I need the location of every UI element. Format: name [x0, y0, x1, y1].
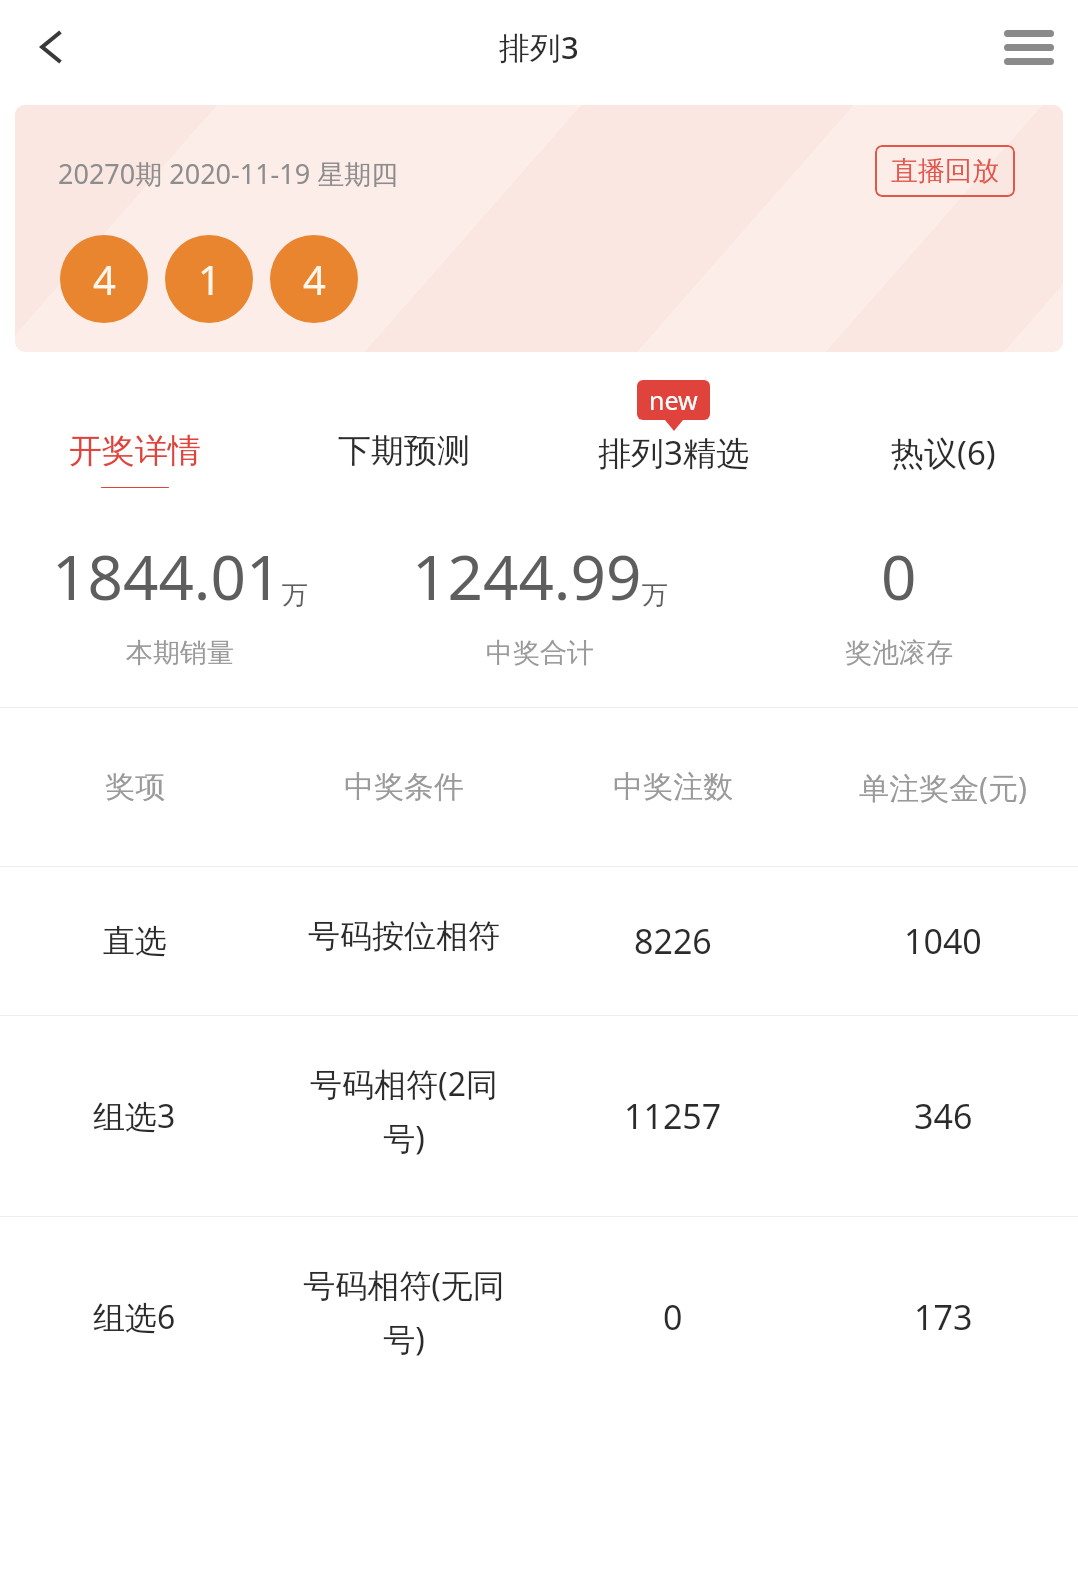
staticText: 号码按位相符 — [308, 916, 500, 956]
staticText: 开奖详情 — [69, 430, 201, 472]
staticText: 热议(6) — [891, 430, 996, 475]
button[interactable]: 1244.99 — [360, 534, 719, 670]
staticText: 8226 — [634, 918, 712, 964]
button[interactable]: 1844.01 — [0, 534, 360, 670]
staticText: 排列3 — [499, 26, 579, 68]
button[interactable]: 下期预测 — [269, 378, 538, 488]
staticText: 排列3精选 — [598, 430, 749, 475]
staticText: 11257 — [624, 1093, 722, 1139]
staticText: 万 — [642, 579, 668, 612]
staticText: 直选 — [103, 921, 167, 961]
staticText: 4 — [303, 252, 326, 306]
staticText: 万 — [282, 579, 308, 612]
staticText: 173 — [914, 1294, 973, 1340]
staticText: 单注奖金(元) — [859, 767, 1027, 808]
staticText: 1040 — [904, 918, 982, 964]
staticText: 号) — [383, 1116, 425, 1160]
staticText: 号码相符(2同 — [310, 1062, 498, 1106]
button[interactable]: 组选6 — [0, 1217, 1078, 1417]
staticText: 中奖条件 — [344, 768, 464, 806]
staticText: 0 — [663, 1294, 683, 1340]
staticText: 中奖合计 — [486, 636, 594, 670]
staticText: new — [649, 383, 698, 417]
staticText: 中奖注数 — [613, 768, 733, 806]
staticText: 0 — [881, 534, 917, 618]
staticText: 组选6 — [93, 1295, 176, 1339]
staticText: 本期销量 — [126, 636, 234, 670]
staticText: 346 — [914, 1093, 973, 1139]
button[interactable]: 排列3精选 — [538, 378, 808, 488]
staticText: 下期预测 — [338, 430, 470, 472]
button[interactable]: 0 — [719, 534, 1078, 670]
staticText: 20270期 2020-11-19 星期四 — [58, 155, 399, 192]
staticText: 1 — [198, 252, 221, 306]
staticText: 4 — [93, 252, 116, 306]
button[interactable]: 热议(6) — [808, 378, 1078, 488]
staticText: 1244.99 — [412, 534, 642, 618]
button[interactable]: 直选 — [0, 867, 1078, 1015]
staticText: 号码相符(无同 — [303, 1263, 505, 1307]
button[interactable]: 直播回放 — [875, 145, 1015, 197]
staticText: 奖池滚存 — [845, 636, 953, 670]
staticText: 组选3 — [93, 1094, 176, 1138]
button[interactable]: 组选3 — [0, 1016, 1078, 1216]
button[interactable]: Back — [22, 16, 84, 78]
staticText: 直播回放 — [891, 154, 999, 188]
button[interactable]: 开奖详情 — [0, 378, 269, 488]
button[interactable]: 20270期 2020-11-19 星期四 — [15, 105, 1063, 352]
button[interactable]: Menu — [998, 16, 1060, 78]
staticText: 号) — [383, 1317, 425, 1361]
staticText: 奖项 — [105, 768, 165, 806]
staticText: 1844.01 — [52, 534, 282, 618]
